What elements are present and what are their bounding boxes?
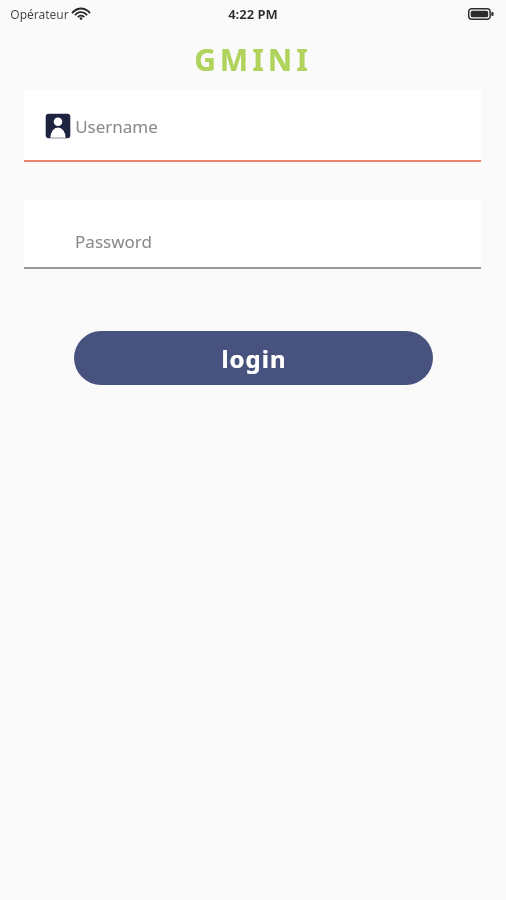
- staticText: Password: [75, 230, 152, 253]
- staticText: Opérateur: [10, 6, 69, 22]
- staticText: Username: [75, 115, 158, 138]
- other: Username: [43, 111, 73, 141]
- staticText: login: [221, 342, 287, 375]
- staticText: 4:22 PM: [228, 5, 278, 23]
- button[interactable]: Password: [24, 200, 481, 269]
- staticText: GMINI: [194, 39, 312, 80]
- button[interactable]: Username: [24, 90, 481, 162]
- button[interactable]: login: [74, 331, 433, 385]
